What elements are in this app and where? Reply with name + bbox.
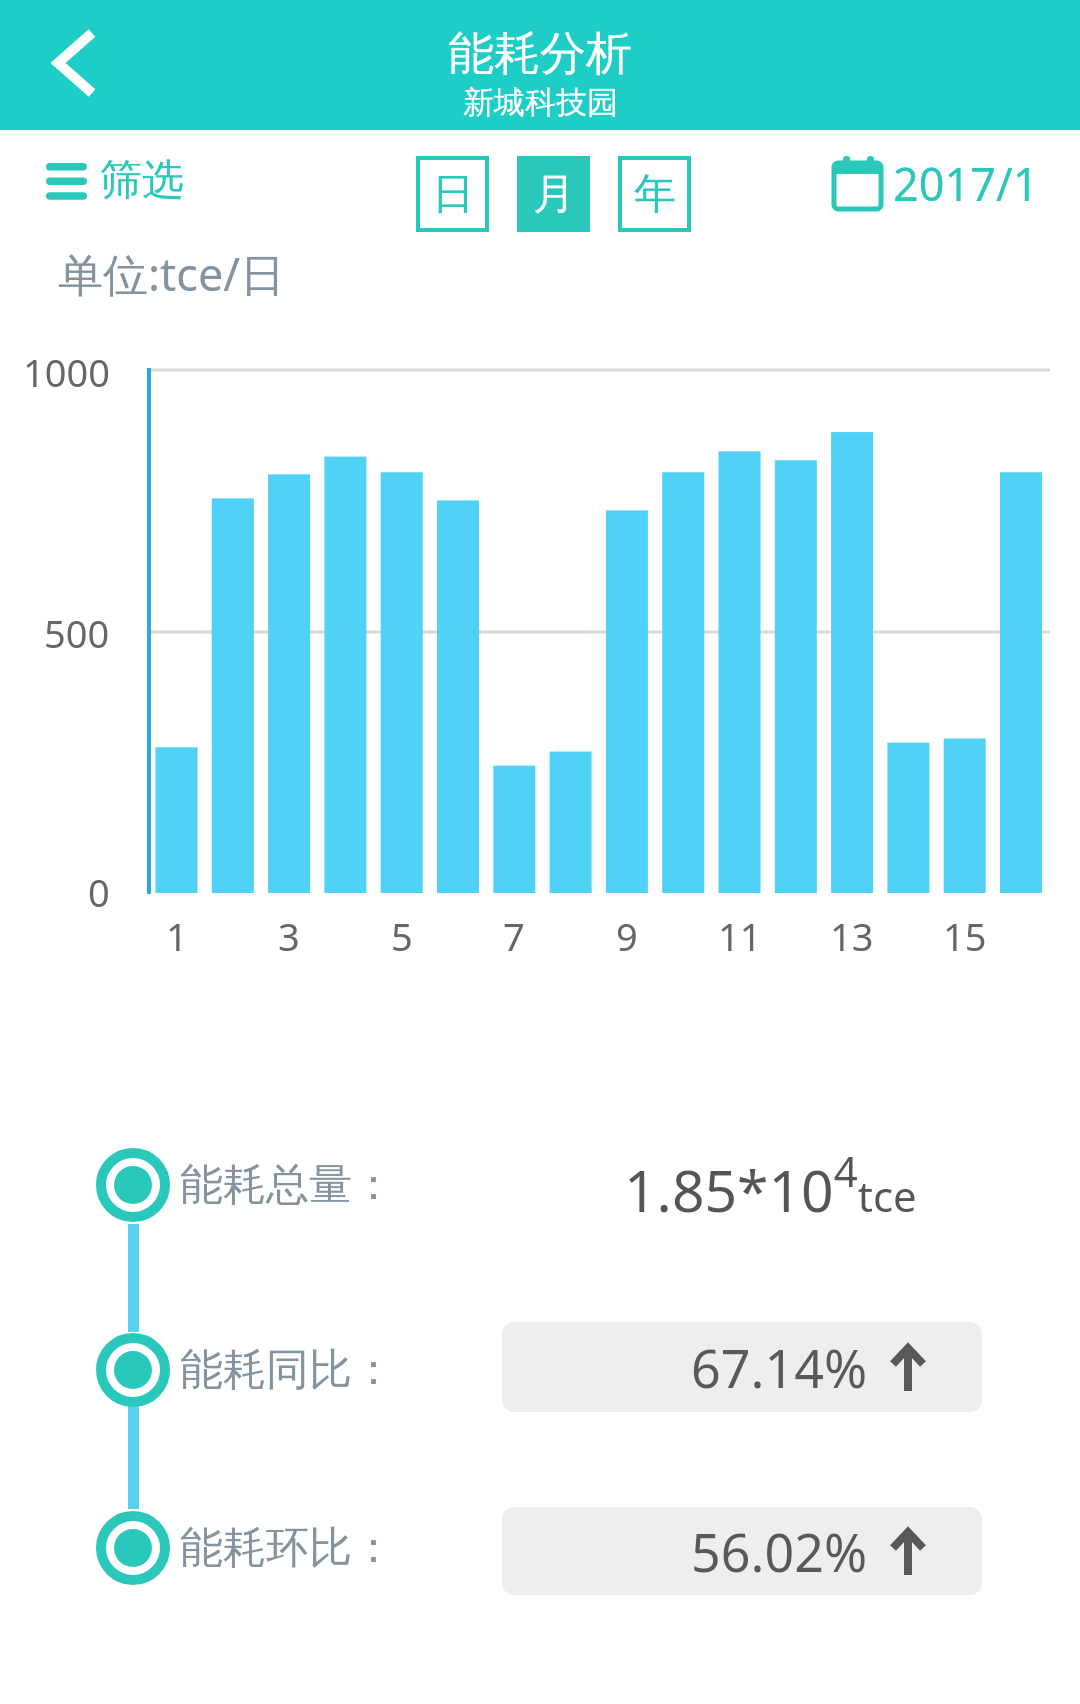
staticText: 1000 [23, 346, 110, 398]
staticText: 7 [503, 910, 525, 962]
staticText: 67.14% [691, 1332, 868, 1403]
staticText: 1 [166, 910, 188, 962]
staticText: 月 [533, 168, 575, 221]
staticText: 5 [391, 910, 413, 962]
staticText: 500 [44, 607, 110, 659]
staticText: 日 [432, 168, 474, 221]
button[interactable]: 筛选 [30, 140, 210, 230]
staticText: 新城科技园 [463, 83, 618, 122]
button[interactable]: 67.14% [502, 1322, 982, 1412]
button[interactable] [28, 8, 122, 118]
button[interactable]: 日 [416, 156, 489, 232]
button[interactable]: 月 [517, 156, 590, 232]
staticText: 15 [943, 910, 987, 962]
staticText: 年 [634, 168, 676, 221]
staticText: 能耗同比： [180, 1343, 395, 1397]
button[interactable]: 2017/1 [820, 140, 1050, 230]
staticText: 56.02% [691, 1516, 868, 1587]
staticText: 能耗分析 [448, 25, 632, 83]
staticText: 能耗总量： [180, 1158, 395, 1212]
staticText: 单位:tce/日 [58, 243, 286, 304]
button[interactable]: 56.02% [502, 1507, 982, 1595]
staticText: 3 [278, 910, 300, 962]
staticText: 13 [830, 910, 874, 962]
staticText: 1.85*104tce [624, 1142, 917, 1228]
staticText: 筛选 [100, 154, 184, 207]
staticText: 能耗环比： [180, 1521, 395, 1575]
staticText: 11 [718, 910, 762, 962]
staticText: 2017/1 [893, 153, 1039, 214]
button[interactable]: 年 [618, 156, 691, 232]
staticText: 0 [88, 866, 110, 918]
staticText: 9 [616, 910, 638, 962]
